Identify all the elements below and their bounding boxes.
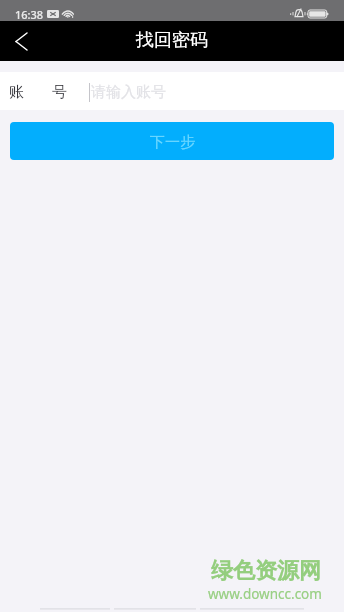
staticText: 号 — [52, 83, 67, 102]
staticText: 16:38 — [15, 7, 44, 22]
staticText: www.downcc.com — [208, 585, 322, 603]
staticText: 下一步 — [150, 133, 195, 152]
staticText: 绿色资源网 — [211, 557, 321, 585]
staticText: 找回密码 — [136, 29, 208, 52]
button[interactable]: 下一步 — [10, 122, 334, 160]
button[interactable]: 账 — [0, 72, 344, 110]
button[interactable]: Back — [0, 21, 44, 61]
staticText: 请输入账号 — [91, 83, 166, 102]
staticText: 账 — [9, 83, 24, 102]
button[interactable]: 请输入账号 — [89, 72, 334, 110]
